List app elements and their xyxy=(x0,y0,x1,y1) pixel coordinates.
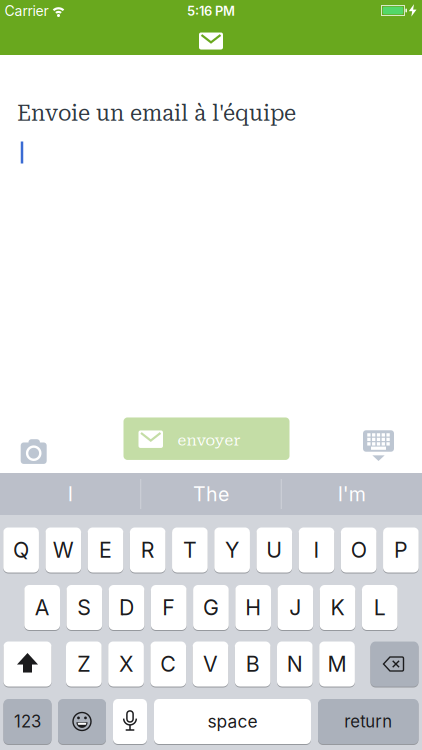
button[interactable]: T xyxy=(172,527,208,572)
button[interactable]: L xyxy=(362,585,398,630)
button[interactable]: Delete xyxy=(370,641,418,686)
button[interactable]: X xyxy=(108,641,144,686)
button[interactable]: Z xyxy=(66,641,102,686)
staticText: K xyxy=(331,595,345,620)
staticText: D xyxy=(119,595,134,620)
button[interactable]: P xyxy=(383,527,419,572)
staticText: space xyxy=(207,711,257,732)
staticText: U xyxy=(266,537,282,563)
button[interactable]: Dismiss keyboard xyxy=(352,427,404,471)
staticText: Z xyxy=(77,651,90,677)
staticText: return xyxy=(344,711,392,732)
staticText: L xyxy=(374,595,386,620)
staticText: B xyxy=(246,651,260,677)
staticText: X xyxy=(119,651,133,677)
button[interactable]: W xyxy=(45,527,81,572)
staticText: V xyxy=(203,651,218,677)
staticText: I'm xyxy=(338,482,366,506)
button[interactable]: O xyxy=(341,527,377,572)
button[interactable]: return xyxy=(318,699,418,744)
staticText: Q xyxy=(13,537,29,563)
staticText: E xyxy=(99,537,112,563)
staticText: O xyxy=(351,537,367,563)
button[interactable]: 123 xyxy=(3,699,51,744)
staticText: Y xyxy=(225,537,239,563)
staticText: G xyxy=(203,595,219,620)
button[interactable]: H xyxy=(235,585,271,630)
button[interactable]: R xyxy=(130,527,166,572)
staticText: I xyxy=(68,482,73,506)
button[interactable]: S xyxy=(66,585,102,630)
staticText: A xyxy=(35,595,50,620)
button[interactable]: envoyer xyxy=(123,417,289,460)
staticText: The xyxy=(193,482,229,506)
staticText: H xyxy=(245,595,261,620)
staticText: W xyxy=(53,537,74,563)
button[interactable]: G xyxy=(193,585,229,630)
button[interactable]: Y xyxy=(214,527,250,572)
staticText: S xyxy=(77,595,91,620)
button[interactable]: B xyxy=(235,641,270,686)
button[interactable]: D xyxy=(109,585,144,630)
staticText: 123 xyxy=(14,711,41,732)
staticText: P xyxy=(394,537,408,563)
staticText: C xyxy=(160,651,176,677)
staticText: Carrier xyxy=(4,2,48,19)
button[interactable]: J xyxy=(277,585,313,630)
button[interactable]: The xyxy=(142,473,280,515)
button[interactable]: Shift xyxy=(3,641,51,686)
button[interactable]: space xyxy=(154,699,311,744)
staticText: envoyer xyxy=(177,432,240,449)
staticText: 5:16 PM xyxy=(187,3,235,19)
button[interactable]: U xyxy=(256,527,292,572)
button[interactable]: V xyxy=(193,641,228,686)
button[interactable]: A xyxy=(24,585,60,630)
staticText: J xyxy=(289,595,301,620)
staticText: T xyxy=(183,537,197,563)
button[interactable]: K xyxy=(320,585,355,630)
button[interactable]: Dictate xyxy=(113,699,147,744)
button[interactable]: F xyxy=(151,585,187,630)
button[interactable]: I'm xyxy=(283,473,421,515)
button[interactable]: Q xyxy=(3,527,39,572)
button[interactable]: Emoji xyxy=(58,699,106,744)
staticText: I xyxy=(313,537,319,563)
staticText: Envoie un email à l'équipe xyxy=(17,101,296,126)
staticText: M xyxy=(328,651,347,677)
staticText: N xyxy=(287,651,303,677)
button[interactable]: I xyxy=(1,473,139,515)
button[interactable]: Camera xyxy=(8,429,60,473)
staticText: R xyxy=(141,537,155,563)
button[interactable]: N xyxy=(277,641,313,686)
button[interactable]: E xyxy=(88,527,123,572)
staticText: F xyxy=(162,595,175,620)
button[interactable]: M xyxy=(319,641,355,686)
button[interactable]: I xyxy=(299,527,334,572)
button[interactable]: C xyxy=(150,641,186,686)
